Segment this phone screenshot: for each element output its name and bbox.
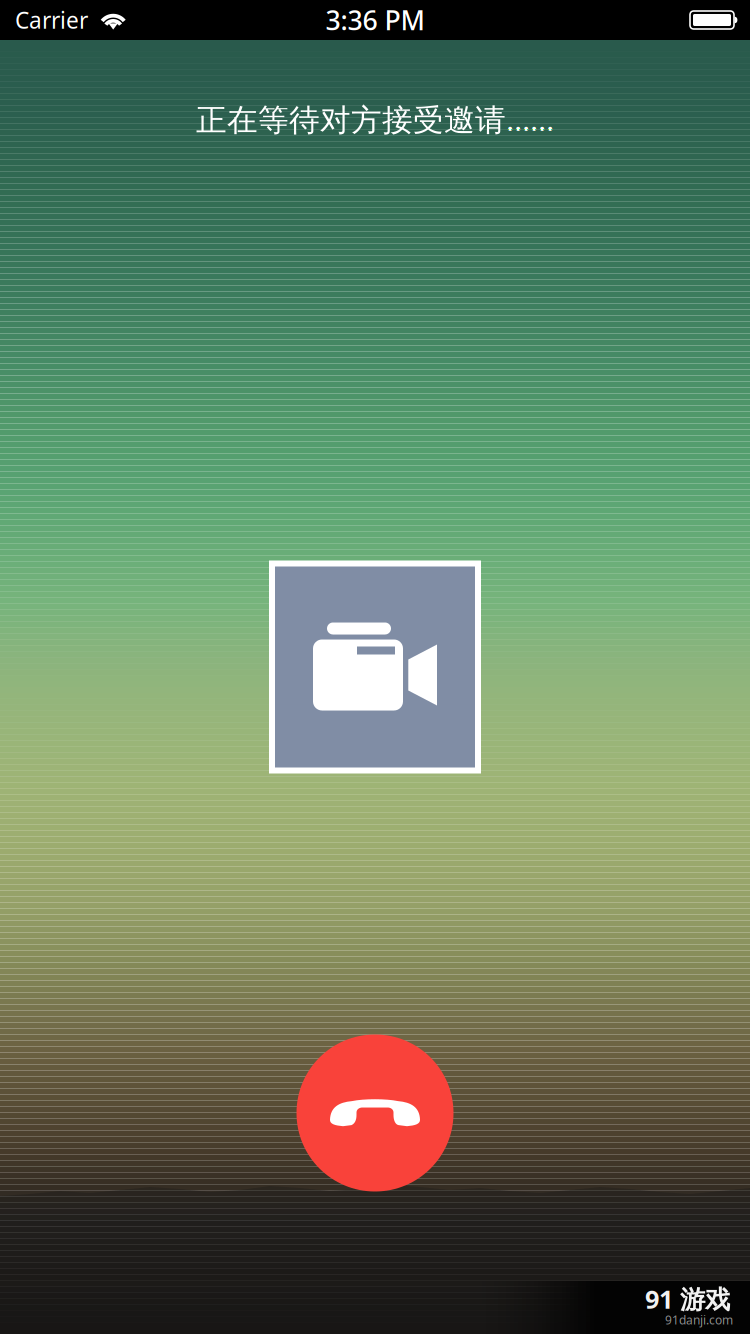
button[interactable]: End call (296, 1034, 453, 1191)
staticText: 3:36 PM (325, 2, 424, 38)
staticText: Carrier (15, 5, 88, 35)
staticText: 正在等待对方接受邀请…… (196, 99, 554, 139)
staticText: 91danji.com (665, 1312, 733, 1328)
staticText: 91 游戏 (645, 1282, 730, 1316)
